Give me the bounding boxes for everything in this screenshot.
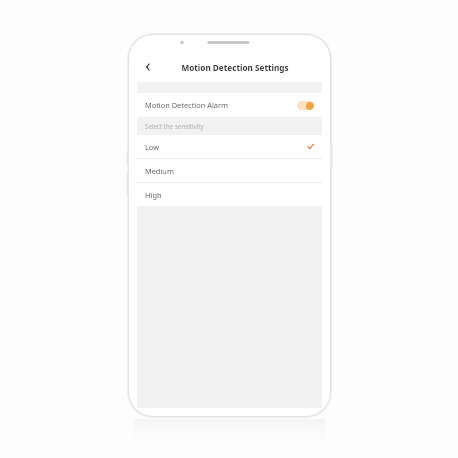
button[interactable]: Back (137, 56, 159, 78)
button[interactable]: Medium (137, 159, 322, 182)
button[interactable]: Motion Detection Alarm toggle (297, 101, 314, 110)
staticText: Motion Detection Alarm (145, 100, 228, 110)
staticText: High (145, 190, 162, 200)
staticText: Motion Detection Settings (181, 62, 289, 73)
button[interactable]: High (137, 183, 322, 206)
button[interactable]: Motion Detection Alarm (137, 93, 322, 117)
button[interactable]: Low (137, 135, 322, 158)
staticText: Low (145, 142, 160, 152)
staticText: Medium (145, 166, 174, 176)
staticText: Select the sensitivity (145, 122, 204, 130)
